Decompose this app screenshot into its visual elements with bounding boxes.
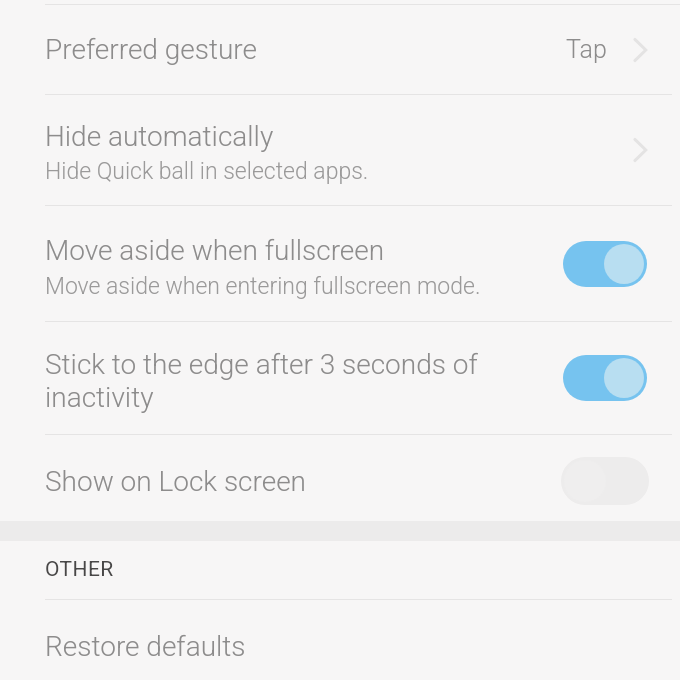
staticText: Stick to the edge after 3 seconds of ina… [45,348,545,414]
button[interactable]: Restore defaults [0,600,680,680]
button[interactable]: Hide automatically [0,95,680,205]
button[interactable]: Stick to the edge after 3 seconds of ina… [0,322,680,434]
staticText: Show on Lock screen [45,465,307,498]
staticText: Move aside when fullscreen [45,234,385,267]
staticText: Move aside when entering fullscreen mode… [45,273,481,300]
button[interactable]: Show on Lock screen [0,435,680,521]
other: Open [632,38,648,62]
staticText: Hide Quick ball in selected apps. [45,158,369,185]
staticText: Hide automatically [45,120,274,153]
button[interactable]: Preferred gesture [0,5,680,94]
button[interactable]: Move aside when fullscreen [0,206,680,321]
other: Open [632,138,648,162]
staticText: Tap [566,35,607,64]
staticText: Preferred gesture [45,33,257,66]
button[interactable]: Toggle, off [561,457,649,505]
staticText: Restore defaults [45,630,246,663]
button[interactable]: Toggle, on [563,355,647,401]
button[interactable]: Toggle, on [563,241,647,287]
staticText: OTHER [45,557,114,582]
